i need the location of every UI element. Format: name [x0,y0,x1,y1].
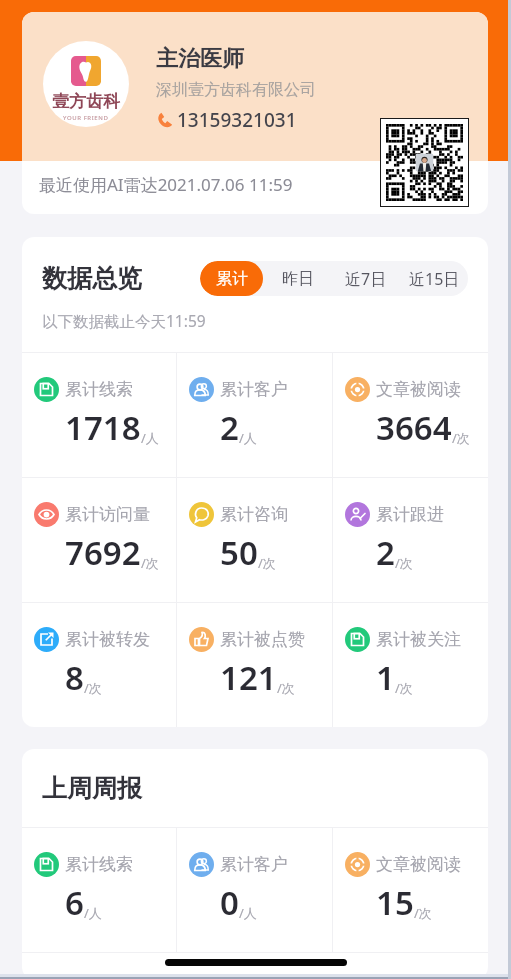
staticText: 累计跟进 [376,504,444,525]
staticText: /次 [395,554,413,572]
staticText: /次 [452,429,470,447]
staticText: 累计被转发 [65,629,150,650]
staticText: 文章被阅读 [376,854,461,875]
staticText: /人 [239,904,257,922]
staticText: 15 [376,880,414,925]
staticText: 1718 [65,405,141,450]
staticText: /次 [277,679,295,697]
staticText: /次 [141,554,159,572]
staticText: /次 [414,904,432,922]
staticText: 121 [220,655,277,700]
staticText: 文章被阅读 [376,379,461,400]
staticText: 近15日 [409,268,460,290]
staticText: 7692 [65,530,141,575]
button[interactable]: 累计客户 [177,828,332,952]
staticText: 主治医师 [156,45,244,73]
staticText: 8 [65,655,84,700]
staticText: 深圳壹方齿科有限公司 [156,80,316,100]
staticText: 昨日 [282,269,314,289]
button[interactable]: 累计线索 [22,353,176,477]
button[interactable]: 近7日 [332,261,400,296]
staticText: YOUR FRIEND [63,114,109,122]
staticText: /次 [395,679,413,697]
staticText: 50 [220,530,258,575]
staticText: 累计客户 [220,854,288,875]
staticText: 累计线索 [65,854,133,875]
staticText: 13159321031 [177,107,297,133]
button[interactable]: 昨日 [263,261,332,296]
staticText: /次 [84,679,102,697]
staticText: 1 [376,655,395,700]
button[interactable]: 文章被阅读 [333,828,488,952]
button[interactable]: 累计 [200,261,263,296]
staticText: 累计被关注 [376,629,461,650]
staticText: 近7日 [345,268,387,290]
staticText: 2 [220,405,239,450]
staticText: 2 [376,530,395,575]
staticText: 最近使用AI雷达2021.07.06 11:59 [39,173,293,196]
staticText: /人 [239,429,257,447]
staticText: 以下数据截止今天11:59 [42,310,206,331]
button[interactable]: 累计跟进 [333,478,488,602]
button[interactable]: 累计咨询 [177,478,332,602]
staticText: 3664 [376,405,452,450]
staticText: 0 [220,880,239,925]
staticText: 6 [65,880,84,925]
button[interactable]: 累计访问量 [22,478,176,602]
staticText: /人 [141,429,159,447]
button[interactable]: 近15日 [400,261,468,296]
button[interactable]: 累计被转发 [22,603,176,727]
staticText: 累计客户 [220,379,288,400]
staticText: 累计被点赞 [220,629,305,650]
button[interactable]: 累计被关注 [333,603,488,727]
staticText: 累计线索 [65,379,133,400]
staticText: 数据总览 [42,263,142,294]
button[interactable]: 文章被阅读 [333,353,488,477]
staticText: /次 [258,554,276,572]
button[interactable]: 累计客户 [177,353,332,477]
staticText: 累计咨询 [220,504,288,525]
button[interactable]: QR code [381,119,468,206]
staticText: /人 [84,904,102,922]
button[interactable]: 累计被点赞 [177,603,332,727]
staticText: 累计访问量 [65,504,150,525]
staticText: 累计 [216,269,248,289]
staticText: 上周周报 [42,773,142,804]
staticText: 壹方齿科 [52,91,120,112]
button[interactable]: 累计线索 [22,828,176,952]
